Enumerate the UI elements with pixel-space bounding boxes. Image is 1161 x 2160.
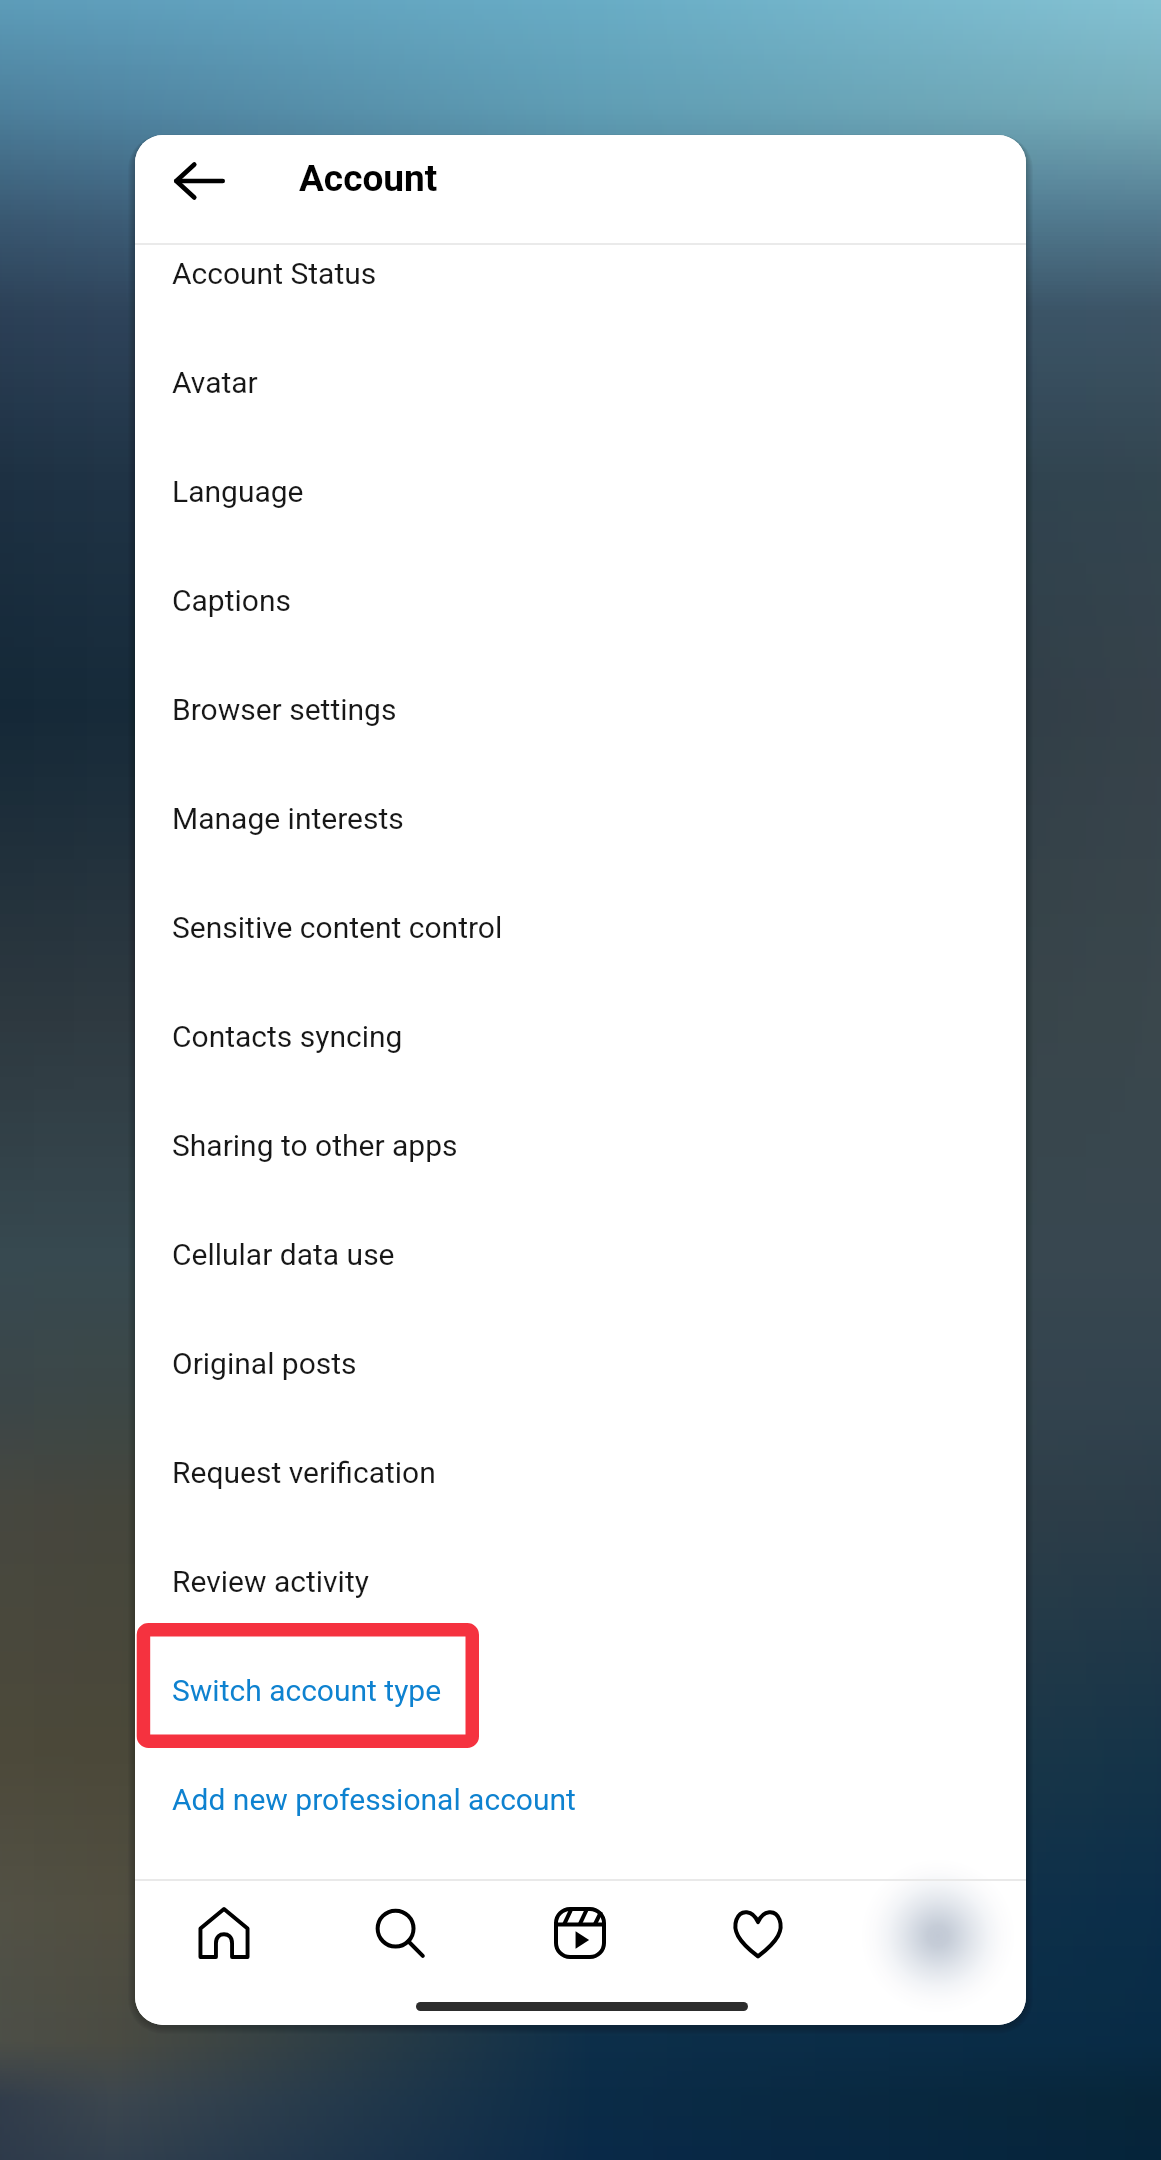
button[interactable]: Review activity bbox=[135, 1527, 1026, 1636]
button[interactable]: Profile bbox=[892, 1887, 984, 1979]
staticText: Manage interests bbox=[172, 801, 404, 836]
button[interactable]: Cellular data use bbox=[135, 1200, 1026, 1309]
button[interactable]: Search bbox=[354, 1887, 446, 1979]
button[interactable]: Sharing to other apps bbox=[135, 1091, 1026, 1200]
button[interactable]: Avatar bbox=[135, 328, 1026, 437]
staticText: Account Status bbox=[172, 256, 377, 291]
button[interactable]: Switch account type bbox=[135, 1636, 1026, 1745]
button[interactable]: Reels bbox=[534, 1887, 626, 1979]
staticText: Original posts bbox=[172, 1346, 357, 1381]
button[interactable]: Request verification bbox=[135, 1418, 1026, 1527]
staticText: Avatar bbox=[172, 365, 258, 400]
staticText: Language bbox=[172, 474, 304, 509]
staticText: Captions bbox=[172, 583, 291, 618]
button[interactable]: Sensitive content control bbox=[135, 873, 1026, 982]
button[interactable]: Original posts bbox=[135, 1309, 1026, 1418]
button[interactable]: Home bbox=[178, 1887, 270, 1979]
staticText: Switch account type bbox=[172, 1673, 442, 1708]
button[interactable]: Account Status bbox=[135, 242, 1026, 328]
button[interactable]: Captions bbox=[135, 546, 1026, 655]
button[interactable]: Browser settings bbox=[135, 655, 1026, 764]
staticText: Cellular data use bbox=[172, 1237, 395, 1272]
button[interactable]: Back bbox=[155, 137, 243, 225]
staticText: Sharing to other apps bbox=[172, 1128, 458, 1163]
button[interactable]: Add new professional account bbox=[135, 1745, 1026, 1854]
staticText: Add new professional account bbox=[172, 1782, 576, 1817]
staticText: Request verification bbox=[172, 1455, 436, 1490]
button[interactable]: Contacts syncing bbox=[135, 982, 1026, 1091]
staticText: Contacts syncing bbox=[172, 1019, 403, 1054]
staticText: Sensitive content control bbox=[172, 910, 503, 945]
button[interactable]: Manage interests bbox=[135, 764, 1026, 873]
staticText: Account bbox=[299, 157, 438, 200]
button[interactable]: Activity bbox=[712, 1887, 804, 1979]
staticText: Review activity bbox=[172, 1564, 369, 1599]
button[interactable]: Language bbox=[135, 437, 1026, 546]
staticText: Browser settings bbox=[172, 692, 397, 727]
